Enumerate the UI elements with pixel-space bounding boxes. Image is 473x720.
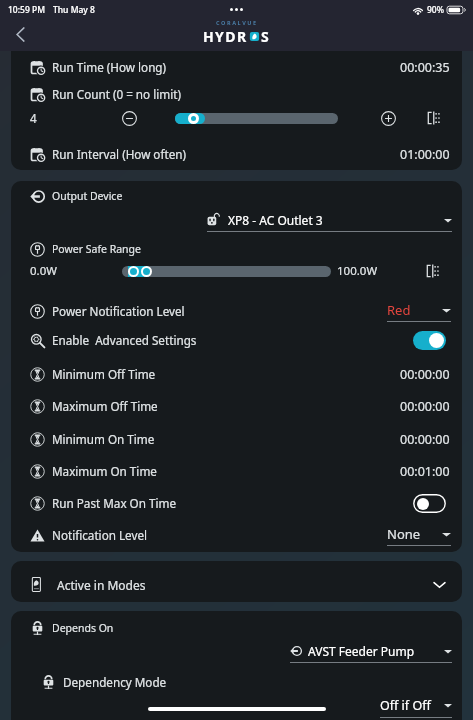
staticText: Run Time (How long) <box>52 59 167 75</box>
button[interactable] <box>413 494 446 513</box>
button[interactable]: Notification Level <box>11 521 462 549</box>
staticText: 0.0W <box>30 263 57 279</box>
staticText: HYDR <box>203 27 248 46</box>
staticText: Thu May 8 <box>53 4 95 16</box>
staticText: Active in Modes <box>57 577 146 593</box>
staticText: Dependency Mode <box>63 674 167 690</box>
button[interactable]: Decrease <box>119 108 139 128</box>
button[interactable]: Run Interval (How often) <box>11 140 462 168</box>
button[interactable]: Run Past Max On Time <box>11 489 462 517</box>
staticText: 90% <box>427 4 444 16</box>
button[interactable]: Maximum Off Time <box>11 393 462 419</box>
staticText: AVST Feeder Pump <box>308 643 415 659</box>
staticText: Off if Off <box>380 697 431 714</box>
button[interactable]: Run Count (0 = no limit) <box>11 81 462 107</box>
staticText: 00:00:00 <box>400 366 450 383</box>
button[interactable]: Enable Advanced Settings <box>11 326 462 354</box>
button[interactable]: Numeric keypad <box>423 108 443 128</box>
staticText: 100.0W <box>337 263 378 279</box>
staticText: Depends On <box>52 621 114 635</box>
button[interactable]: Maximum On Time <box>11 458 462 484</box>
button[interactable]: Power Notification Level <box>11 297 462 325</box>
staticText: 00:01:00 <box>400 463 450 480</box>
staticText: 00:00:00 <box>400 398 450 415</box>
staticText: Notification Level <box>52 527 147 543</box>
staticText: Run Past Max On Time <box>52 495 177 511</box>
button[interactable]: Numeric keypad <box>422 261 442 281</box>
button[interactable]: Off if Off <box>380 697 452 718</box>
staticText: 00:00:00 <box>400 431 450 448</box>
staticText: 01:00:00 <box>400 146 450 163</box>
staticText: Red <box>387 301 411 319</box>
staticText: Maximum Off Time <box>52 398 158 414</box>
button[interactable]: Power Safe Range <box>11 238 462 260</box>
button[interactable]: Minimum Off Time <box>11 361 462 387</box>
staticText: Power Notification Level <box>52 303 185 319</box>
button[interactable]: XP8 - AC Outlet 3 <box>207 212 452 232</box>
staticText: 10:59 PM <box>8 4 45 16</box>
button[interactable]: Run Time (How long) <box>11 51 462 85</box>
staticText: 00:00:35 <box>400 59 450 76</box>
button[interactable] <box>413 331 446 350</box>
staticText: 4 <box>30 110 37 126</box>
button[interactable]: Depends On <box>11 617 462 639</box>
button[interactable]: Active in Modes <box>11 561 462 602</box>
button[interactable]: AVST Feeder Pump <box>290 643 452 663</box>
staticText: Output Device <box>52 189 123 203</box>
staticText: XP8 - AC Outlet 3 <box>228 212 323 228</box>
button[interactable]: Minimum On Time <box>11 426 462 452</box>
staticText: Minimum Off Time <box>52 366 156 382</box>
staticText: Enable Advanced Settings <box>52 332 197 348</box>
staticText: None <box>387 525 421 543</box>
button[interactable]: Output Device <box>11 185 462 207</box>
staticText: Minimum On Time <box>52 431 155 447</box>
staticText: CORALVUE <box>216 19 258 26</box>
button[interactable]: Back <box>5 19 35 49</box>
staticText: Maximum On Time <box>52 463 157 479</box>
staticText: S <box>261 27 271 46</box>
staticText: Run Interval (How often) <box>52 146 186 162</box>
button[interactable]: Dependency Mode <box>11 671 462 693</box>
button[interactable]: Increase <box>378 108 398 128</box>
staticText: Power Safe Range <box>52 242 141 256</box>
staticText: Run Count (0 = no limit) <box>52 86 181 102</box>
